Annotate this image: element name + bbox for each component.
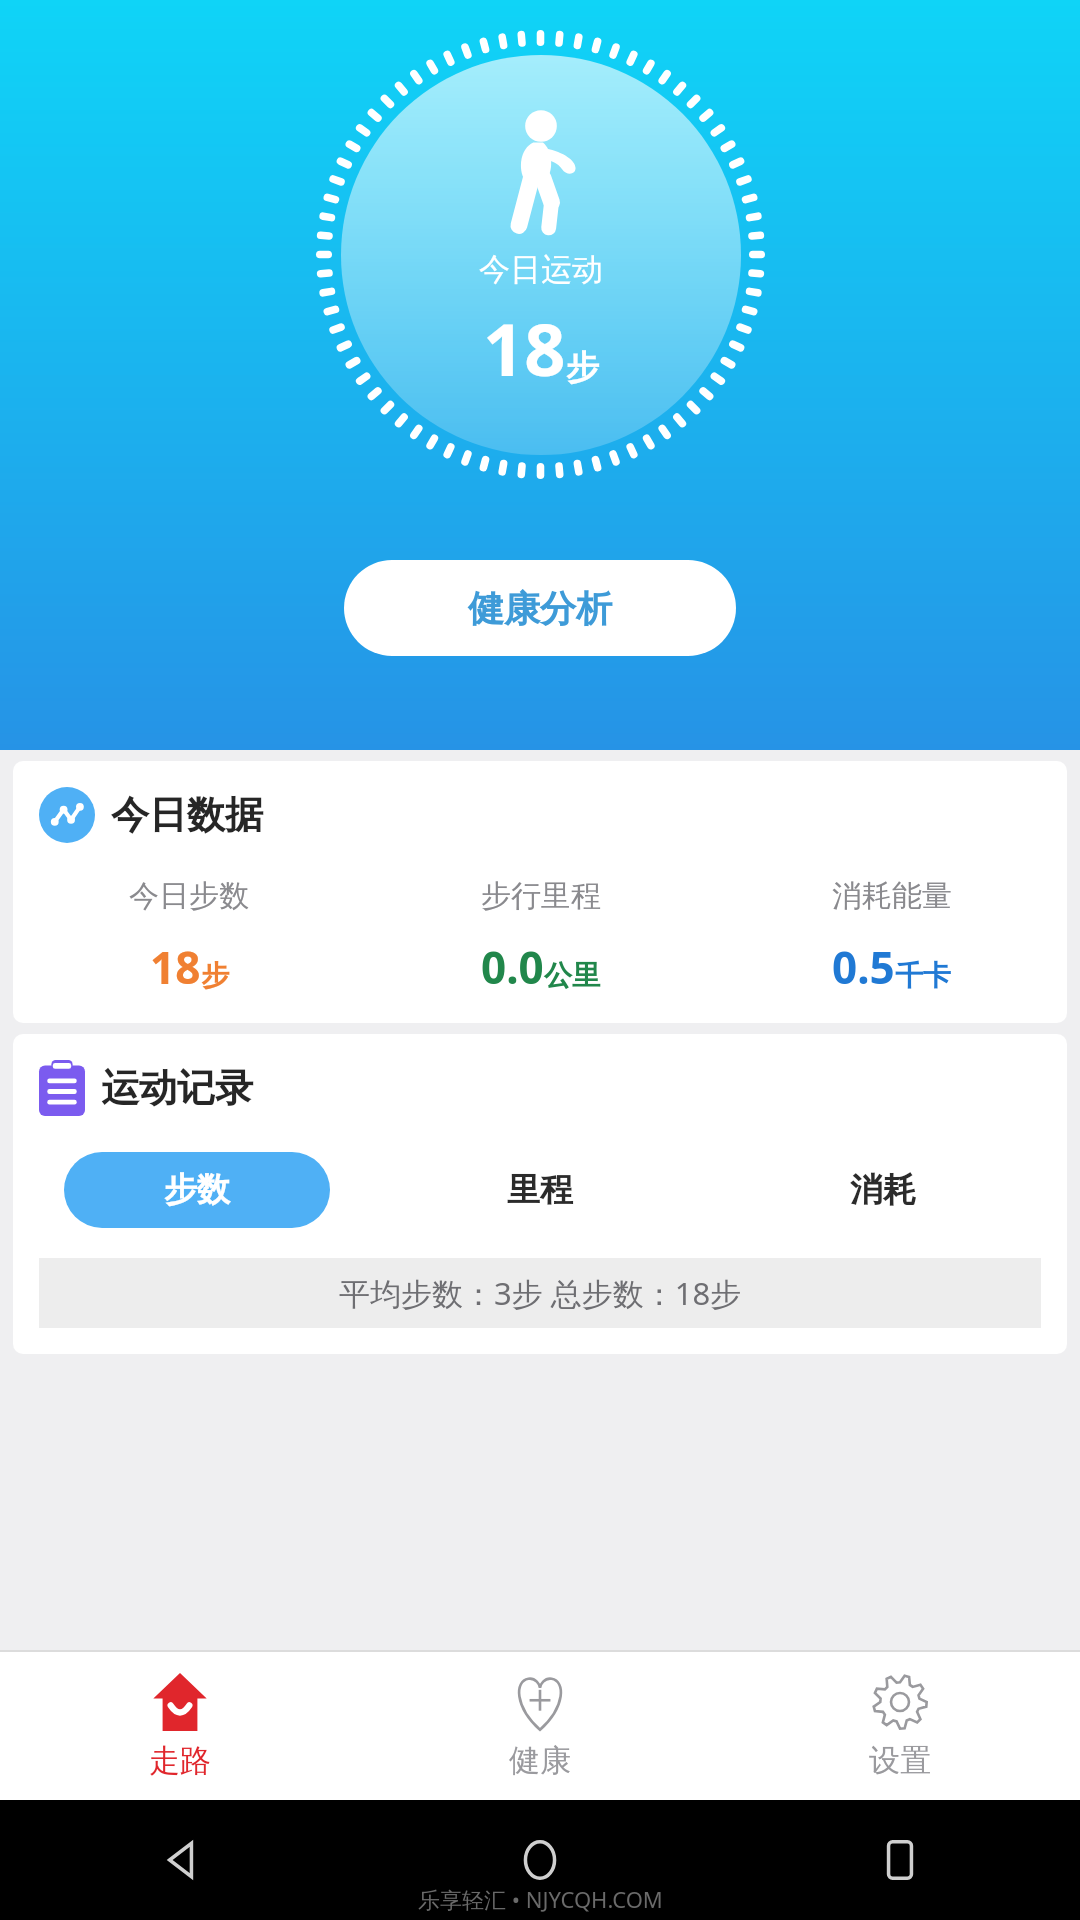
button[interactable]: 设置: [720, 1652, 1080, 1800]
staticText: 今日数据: [111, 791, 263, 839]
staticText: 乐享轻汇 • NJYCQH.COM: [418, 1884, 663, 1914]
staticText: 千卡: [895, 958, 951, 993]
staticText: 18: [150, 937, 201, 997]
button[interactable]: Home: [514, 1834, 566, 1886]
button[interactable]: 消耗能量: [716, 877, 1067, 997]
staticText: 步: [566, 347, 599, 389]
button[interactable]: 今日步数: [13, 877, 365, 997]
staticText: 健康: [509, 1741, 571, 1780]
staticText: 消耗能量: [832, 877, 952, 915]
button[interactable]: 里程: [407, 1152, 673, 1228]
button[interactable]: 今日数据: [13, 761, 1067, 1023]
staticText: 步数: [164, 1169, 230, 1211]
staticText: 平均步数：3步 总步数：18步: [339, 1272, 742, 1314]
button[interactable]: 走路: [0, 1652, 360, 1800]
button[interactable]: 步数: [64, 1152, 330, 1228]
staticText: 设置: [869, 1741, 931, 1780]
button[interactable]: Back: [154, 1834, 206, 1886]
staticText: 0.0: [481, 937, 544, 997]
staticText: 18: [483, 299, 566, 397]
staticText: 公里: [544, 958, 600, 993]
button[interactable]: 消耗: [750, 1152, 1016, 1228]
staticText: 运动记录: [101, 1064, 253, 1112]
button[interactable]: 健康分析: [344, 560, 736, 656]
staticText: 今日步数: [129, 877, 249, 915]
staticText: 里程: [507, 1169, 573, 1211]
staticText: 健康分析: [468, 586, 612, 631]
staticText: 步行里程: [481, 877, 601, 915]
staticText: 消耗: [850, 1169, 916, 1211]
staticText: 步: [201, 958, 229, 993]
staticText: 今日运动: [479, 250, 603, 289]
staticText: 走路: [149, 1741, 211, 1780]
button[interactable]: Recents: [874, 1834, 926, 1886]
button[interactable]: 健康: [360, 1652, 720, 1800]
staticText: 0.5: [832, 937, 895, 997]
button[interactable]: 步行里程: [365, 877, 716, 997]
